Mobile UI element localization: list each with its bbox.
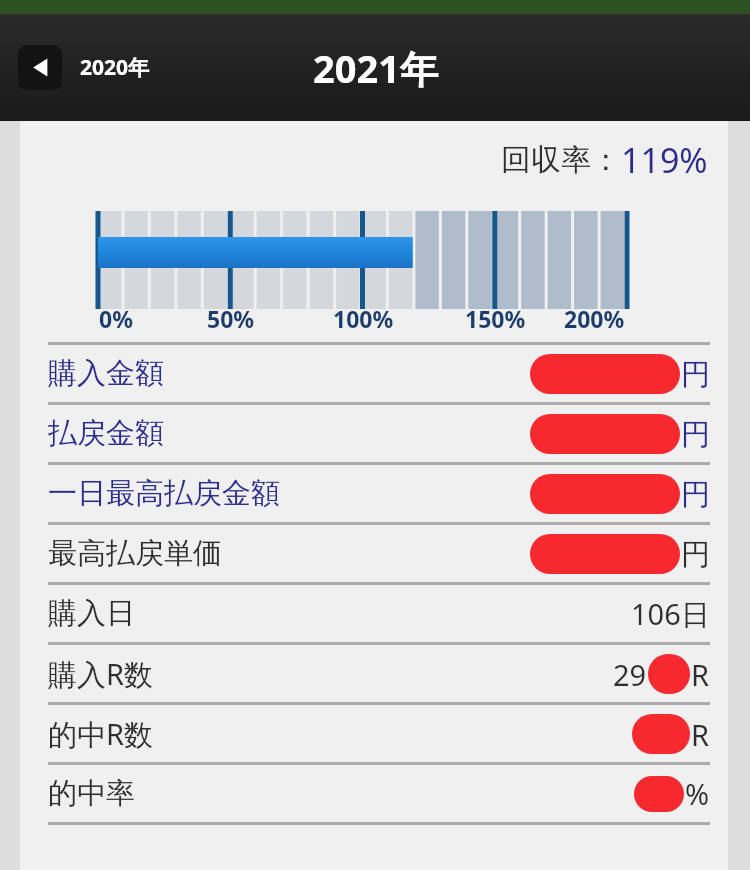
button[interactable]: 的中R数: [20, 702, 728, 762]
staticText: 0%: [99, 303, 133, 334]
staticText: 円: [681, 476, 710, 513]
staticText: 2020年: [80, 53, 150, 82]
staticText: 購入R数: [48, 654, 154, 694]
staticText: 購入日: [48, 595, 135, 632]
staticText: 購入金額: [48, 355, 164, 392]
staticText: 150%: [465, 303, 526, 334]
button[interactable]: 購入金額: [20, 342, 728, 402]
staticText: 円: [681, 416, 710, 453]
staticText: 29: [613, 655, 647, 694]
staticText: 的中R数: [48, 714, 154, 754]
staticText: 119%: [621, 137, 708, 183]
staticText: 円: [681, 536, 710, 573]
staticText: R: [691, 715, 710, 754]
button[interactable]: 購入R数: [20, 642, 728, 702]
staticText: 最高払戻単価: [48, 535, 222, 572]
button[interactable]: 払戻金額: [20, 402, 728, 462]
staticText: 払戻金額: [48, 415, 164, 452]
button[interactable]: 一日最高払戻金額: [20, 462, 728, 522]
button[interactable]: Back to 2020: [18, 45, 150, 90]
staticText: %: [685, 774, 710, 813]
button[interactable]: 的中率: [20, 762, 728, 822]
button[interactable]: 購入日: [20, 582, 728, 642]
staticText: 200%: [564, 303, 625, 334]
staticText: 一日最高払戻金額: [48, 475, 280, 512]
staticText: R: [691, 655, 710, 694]
staticText: 100%: [333, 303, 394, 334]
staticText: 2021年: [313, 42, 438, 94]
staticText: 的中率: [48, 775, 135, 812]
staticText: 106日: [631, 594, 710, 634]
button[interactable]: 最高払戻単価: [20, 522, 728, 582]
staticText: 50%: [207, 303, 255, 334]
staticText: 円: [681, 356, 710, 393]
staticText: 回収率：: [501, 141, 621, 179]
